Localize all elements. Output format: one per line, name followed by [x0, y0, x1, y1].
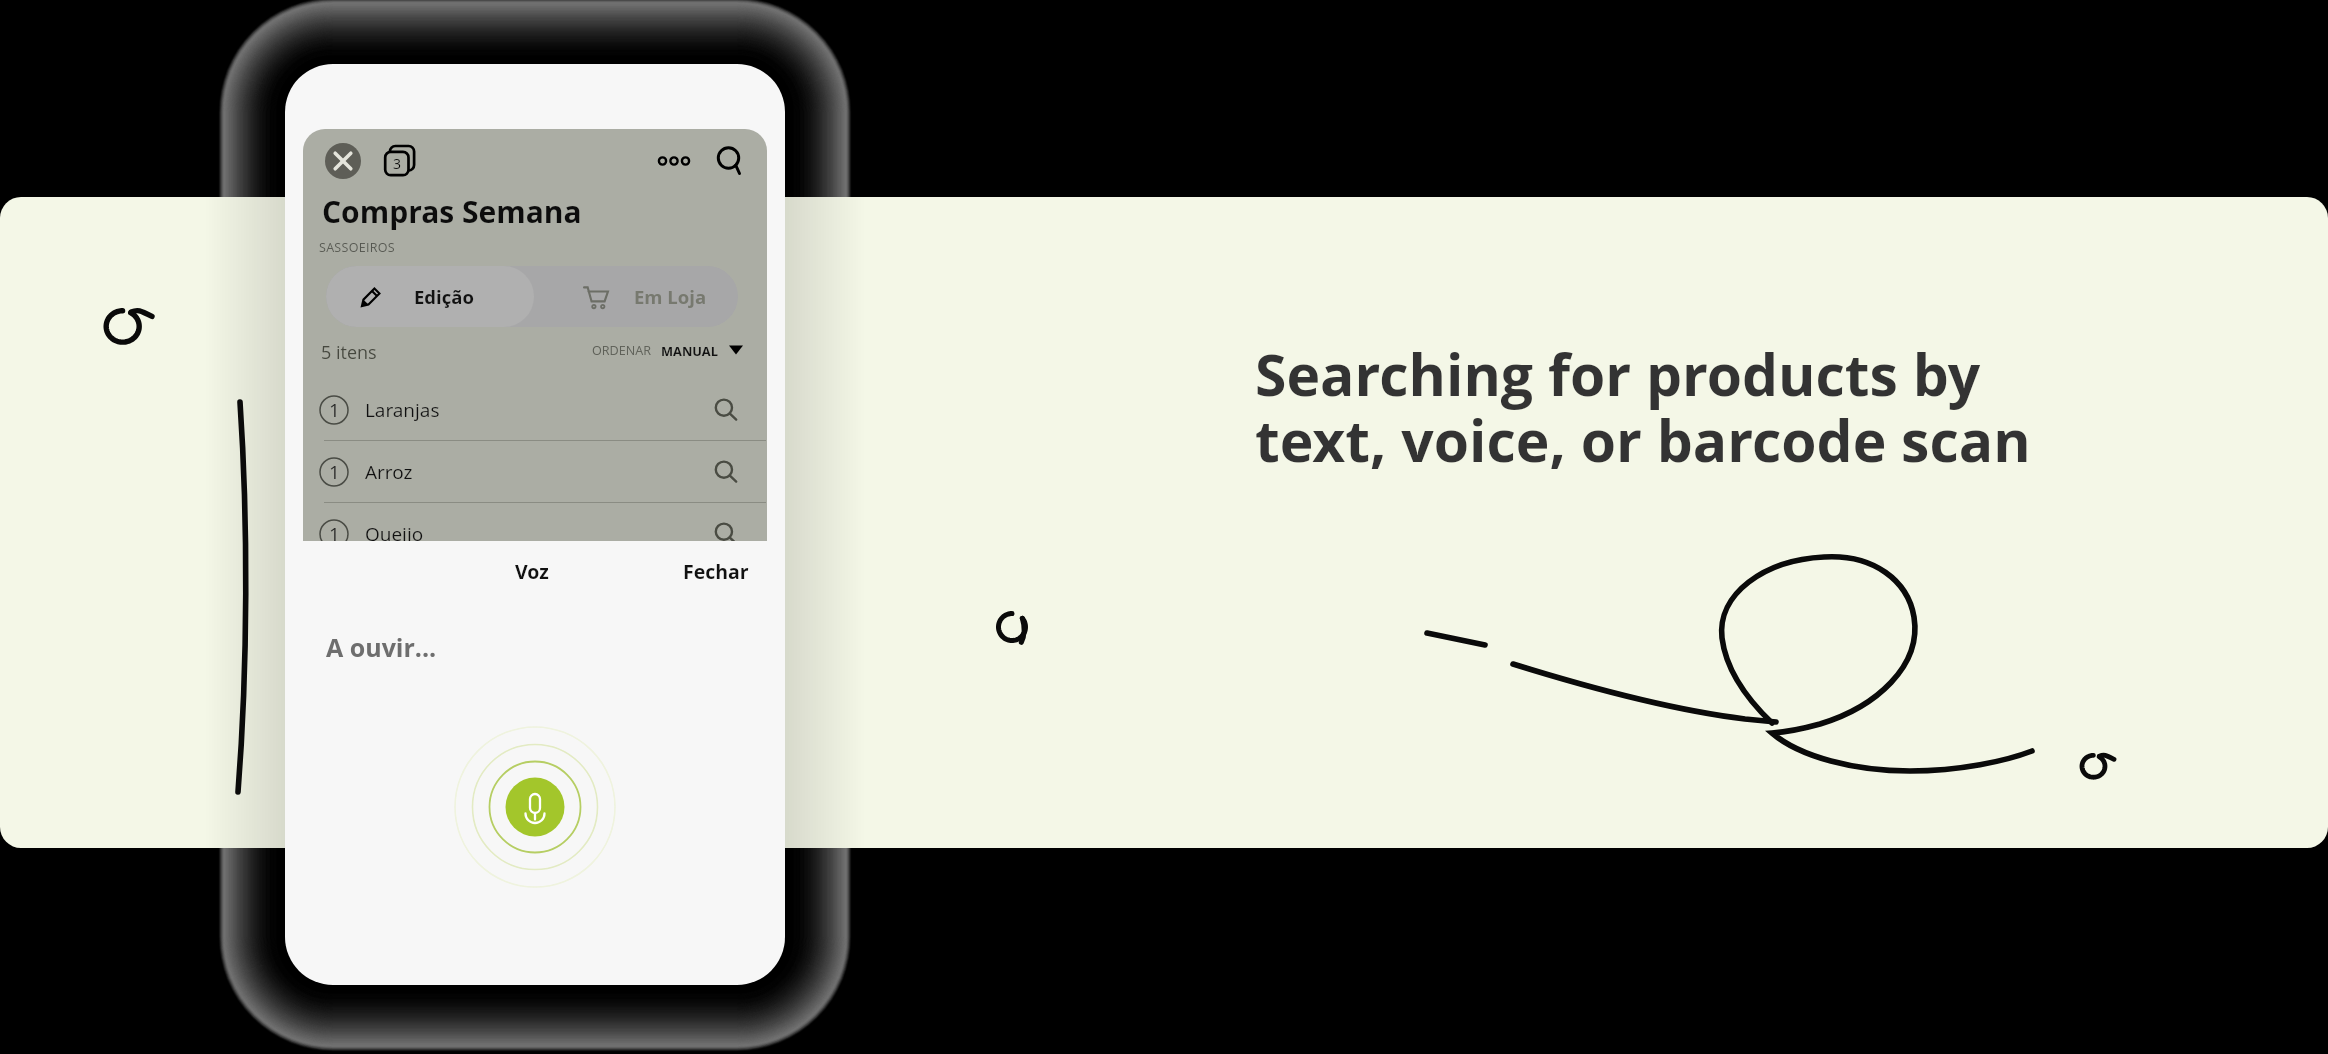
staticText: Voz	[515, 558, 549, 585]
button[interactable]: Close	[325, 143, 361, 179]
staticText: Edição	[414, 284, 474, 309]
staticText: MANUAL	[661, 342, 718, 359]
staticText: Fechar	[683, 558, 749, 585]
staticText: 1	[329, 459, 340, 485]
button[interactable]: Search	[712, 142, 750, 180]
staticText: Searching for products by text, voice, o…	[1255, 335, 2031, 479]
staticText: Arroz	[365, 459, 413, 485]
staticText: SASSOEIROS	[319, 239, 395, 256]
button[interactable]: Search Arroz	[711, 457, 741, 487]
button[interactable]: Lists	[383, 144, 417, 178]
staticText: A ouvir...	[326, 630, 437, 664]
staticText: 5 itens	[321, 340, 377, 365]
button[interactable]: Voz	[506, 552, 558, 591]
staticText: Em Loja	[634, 284, 707, 309]
button[interactable]: 1	[303, 503, 767, 541]
staticText: 1	[329, 397, 340, 423]
staticText: ORDENAR	[592, 342, 652, 359]
staticText: Queijo	[365, 521, 424, 541]
button[interactable]: 1	[303, 441, 767, 502]
staticText: Laranjas	[365, 397, 440, 423]
button[interactable]: Voice input	[450, 722, 620, 892]
button[interactable]: Fechar	[674, 552, 758, 591]
button[interactable]: Search Queijo	[711, 519, 741, 541]
staticText: 1	[329, 521, 340, 541]
button[interactable]: Edição	[326, 266, 534, 327]
button[interactable]: 1	[303, 379, 767, 440]
staticText: Compras Semana	[322, 191, 582, 232]
button[interactable]: Search Laranjas	[711, 395, 741, 425]
staticText: 3	[393, 154, 402, 173]
button[interactable]: More options	[656, 143, 692, 179]
button[interactable]: Em Loja	[534, 266, 738, 327]
